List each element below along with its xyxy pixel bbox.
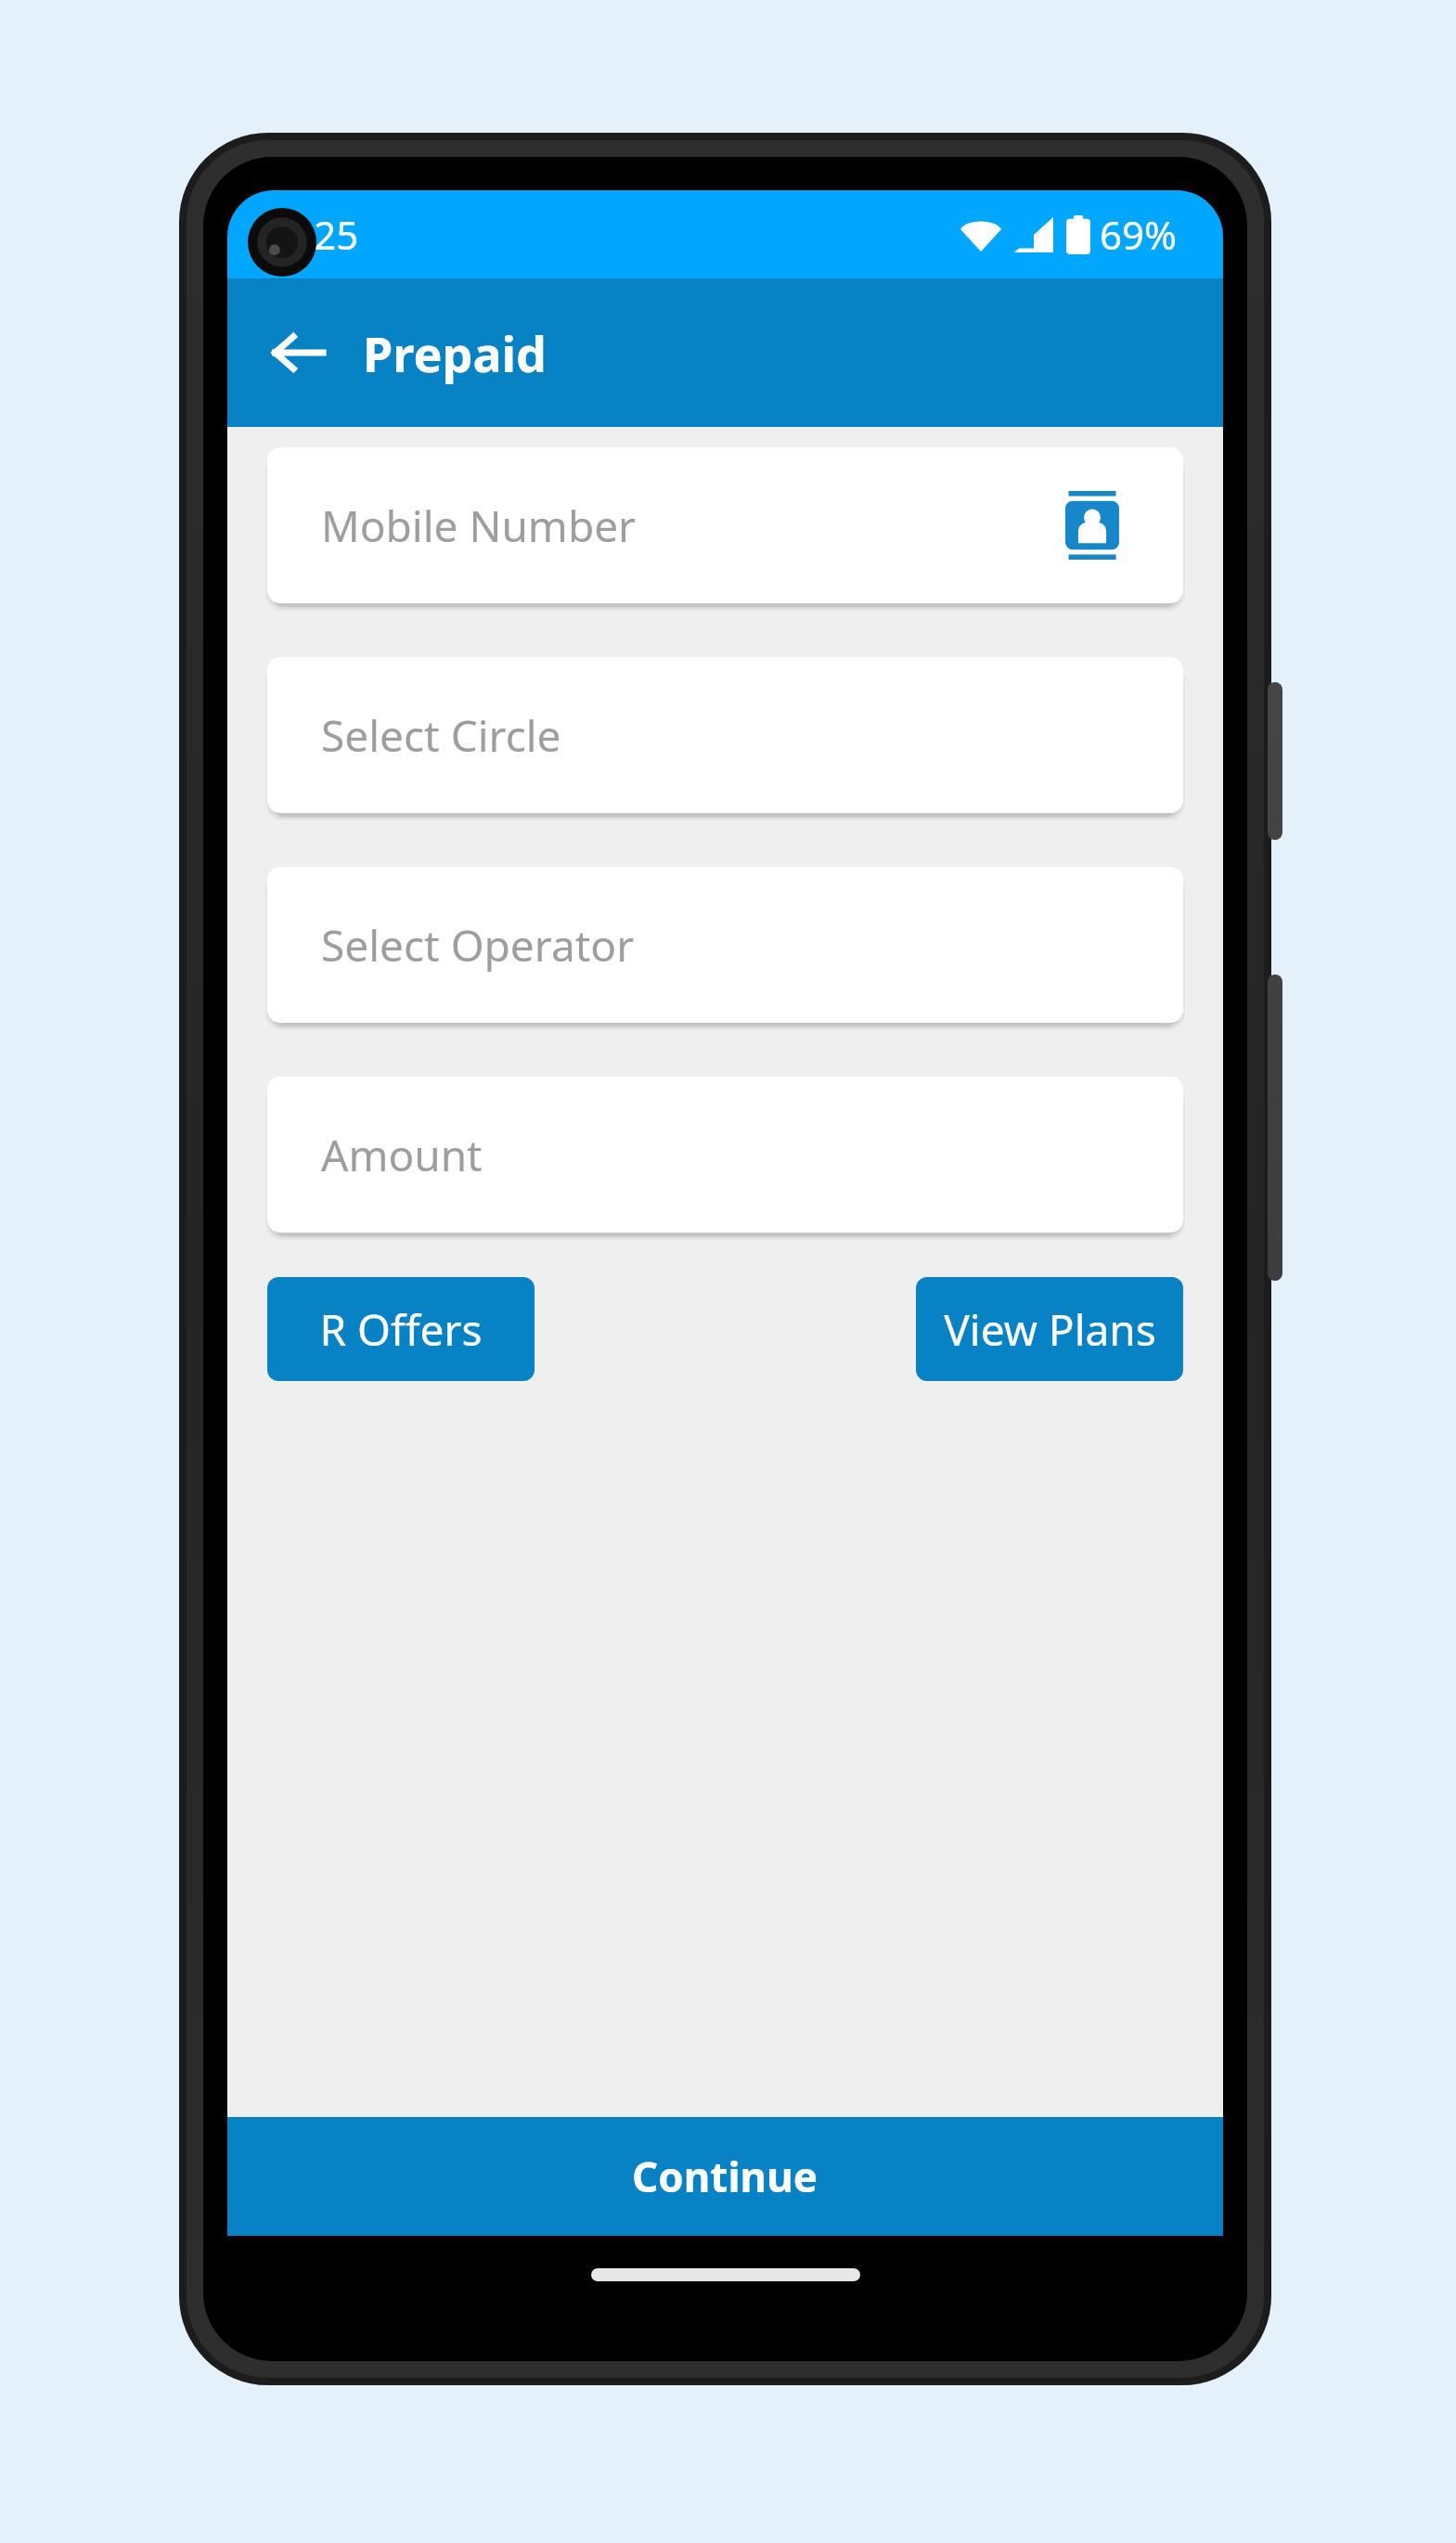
staticText: Continue <box>632 2149 818 2204</box>
staticText: R Offers <box>319 1300 483 1359</box>
button[interactable]: Back <box>259 313 339 393</box>
staticText: 69% <box>1100 208 1177 261</box>
staticText: Select Operator <box>321 916 1129 975</box>
staticText: 9:25 <box>281 208 359 261</box>
staticText: Select Circle <box>321 706 1129 765</box>
button[interactable]: Select Operator <box>267 867 1183 1023</box>
button[interactable]: Amount <box>267 1077 1183 1233</box>
button[interactable]: View Plans <box>916 1277 1183 1381</box>
button[interactable]: R Offers <box>267 1277 535 1381</box>
staticText: Mobile Number <box>321 497 1055 555</box>
button[interactable]: Select Circle <box>267 657 1183 813</box>
button[interactable]: Mobile Number <box>267 447 1183 603</box>
button[interactable]: Pick contact <box>1055 488 1129 562</box>
button[interactable]: Continue <box>227 2117 1223 2236</box>
staticText: Amount <box>321 1126 1129 1184</box>
staticText: Prepaid <box>363 320 547 386</box>
staticText: View Plans <box>944 1300 1156 1359</box>
